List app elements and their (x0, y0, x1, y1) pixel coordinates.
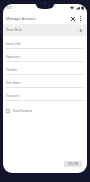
button[interactable]: Close (68, 14, 77, 23)
staticText: LOG ON (68, 162, 78, 166)
staticText: Provider (6, 68, 18, 72)
staticText: 9:41 (6, 6, 12, 10)
staticText: Server Path (6, 42, 22, 46)
button[interactable]: LOG ON (64, 161, 82, 167)
staticText: User Name (6, 81, 21, 85)
button[interactable]: Demo Mode (3, 24, 87, 36)
button[interactable]: More options (77, 15, 84, 22)
staticText: Manage Account (6, 16, 36, 21)
staticText: Show Password (13, 109, 32, 113)
staticText: Repository (6, 55, 21, 59)
button[interactable]: Show Password (3, 101, 87, 113)
staticText: Password (6, 94, 19, 98)
staticText: Demo Mode (6, 28, 23, 32)
